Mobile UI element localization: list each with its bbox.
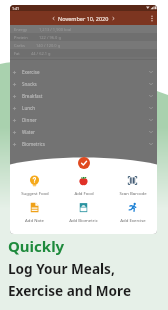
- button[interactable]: Scan Barcode: [108, 175, 157, 197]
- button[interactable]: Snacks: [10, 78, 157, 90]
- button[interactable]: Suggest Food: [10, 175, 59, 197]
- button[interactable]: Add Note: [10, 202, 59, 224]
- staticText: Breakfast: [22, 93, 43, 99]
- staticText: 44 / 62.1 g: [31, 51, 51, 56]
- button[interactable]: Next day: [111, 16, 116, 21]
- staticText: Protein: [14, 35, 28, 40]
- staticText: Fat: [14, 51, 20, 56]
- staticText: Lunch: [22, 105, 36, 111]
- button[interactable]: Add Food: [59, 175, 108, 197]
- staticText: 1,213 / 1,900 kcal: [39, 27, 72, 32]
- button[interactable]: Exercise: [10, 66, 157, 78]
- button[interactable]: Lunch: [10, 102, 157, 114]
- staticText: Snacks: [22, 81, 37, 87]
- button[interactable]: More options: [149, 14, 155, 23]
- staticText: Log Your Meals,: [8, 259, 115, 278]
- staticText: Scan Barcode: [119, 190, 147, 196]
- staticText: 1:41: [12, 6, 20, 11]
- button[interactable]: Add Biometric: [59, 202, 108, 224]
- staticText: Biometrics: [22, 141, 45, 147]
- staticText: Energy: [14, 27, 28, 32]
- button[interactable]: Water: [10, 126, 157, 138]
- staticText: 140 / 120.0 g: [36, 43, 61, 48]
- staticText: Exercise: [22, 69, 40, 75]
- button[interactable]: Breakfast: [10, 90, 157, 102]
- staticText: 122 / 96.0 g: [39, 35, 61, 40]
- staticText: Dinner: [22, 117, 37, 123]
- staticText: Add Note: [25, 217, 44, 223]
- staticText: Water: [22, 129, 35, 135]
- staticText: Quickly: [8, 236, 65, 256]
- button[interactable]: Previous day: [51, 16, 56, 21]
- button[interactable]: Confirm day: [78, 157, 90, 169]
- button[interactable]: Biometrics: [10, 138, 157, 150]
- staticText: Add Food: [74, 190, 94, 196]
- button[interactable]: Add Exercise: [108, 202, 157, 224]
- button[interactable]: Dinner: [10, 114, 157, 126]
- staticText: Carbs: [14, 43, 25, 48]
- staticText: Add Biometric: [69, 217, 98, 223]
- staticText: Exercise and More: [8, 281, 132, 300]
- staticText: Add Exercise: [120, 217, 146, 223]
- staticText: Suggest Food: [21, 190, 49, 196]
- staticText: November 10, 2020: [58, 15, 109, 22]
